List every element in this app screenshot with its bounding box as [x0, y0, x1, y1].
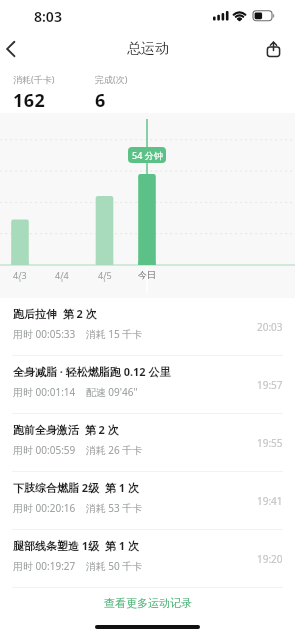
staticText: 8:03	[34, 7, 62, 26]
staticText: 查看更多运动记录	[104, 596, 192, 610]
staticText: 19:55	[257, 436, 283, 450]
staticText: 用时 00:19:27 消耗 50 千卡	[13, 559, 143, 573]
staticText: 4/3	[13, 269, 27, 281]
staticText: 跑后拉伸 第 2 次	[13, 306, 97, 321]
staticText: 162	[13, 88, 46, 113]
staticText: 19:41	[257, 494, 283, 508]
staticText: 今日	[138, 269, 156, 280]
staticText: 完成(次)	[95, 73, 128, 85]
staticText: 19:57	[257, 378, 283, 392]
button[interactable]	[253, 32, 295, 66]
staticText: 54 分钟	[132, 149, 163, 161]
staticText: 4/5	[98, 269, 112, 281]
staticText: 4/4	[55, 269, 69, 281]
button[interactable]: 查看更多运动记录	[0, 590, 295, 616]
button[interactable]	[0, 32, 40, 66]
staticText: 下肢综合燃脂 2级 第 1 次	[13, 480, 139, 495]
button[interactable]: 跑后拉伸 第 2 次	[0, 298, 295, 356]
button[interactable]: 全身减脂 · 轻松燃脂跑 0.12 公里	[0, 356, 295, 414]
staticText: 用时 00:01:14 配速 09'46"	[13, 385, 138, 399]
button[interactable]: 下肢综合燃脂 2级 第 1 次	[0, 472, 295, 530]
staticText: 用时 00:20:16 消耗 53 千卡	[13, 501, 143, 515]
staticText: 19:20	[257, 552, 283, 566]
staticText: 用时 00:05:33 消耗 15 千卡	[13, 327, 143, 341]
button[interactable]: 腿部线条塑造 1级 第 1 次	[0, 530, 295, 588]
staticText: 20:03	[257, 320, 283, 334]
staticText: 全身减脂 · 轻松燃脂跑 0.12 公里	[13, 364, 171, 379]
staticText: 腿部线条塑造 1级 第 1 次	[13, 538, 139, 553]
button[interactable]: 跑前全身激活 第 2 次	[0, 414, 295, 472]
staticText: 总运动	[127, 40, 169, 58]
staticText: 6	[95, 88, 106, 113]
staticText: 消耗(千卡)	[13, 73, 55, 85]
staticText: 跑前全身激活 第 2 次	[13, 422, 119, 437]
staticText: 用时 00:05:59 消耗 26 千卡	[13, 443, 143, 457]
